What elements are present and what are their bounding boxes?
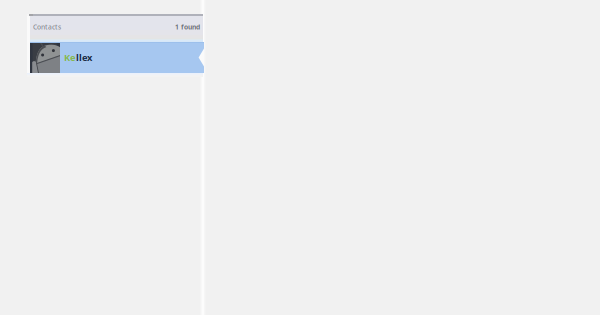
button[interactable]: Contacts: [27, 16, 203, 38]
staticText: Ke: [64, 51, 76, 64]
button[interactable]: Ke: [27, 42, 204, 73]
staticText: 1 found: [175, 23, 200, 31]
staticText: llex: [76, 51, 92, 64]
staticText: Contacts: [33, 23, 61, 31]
